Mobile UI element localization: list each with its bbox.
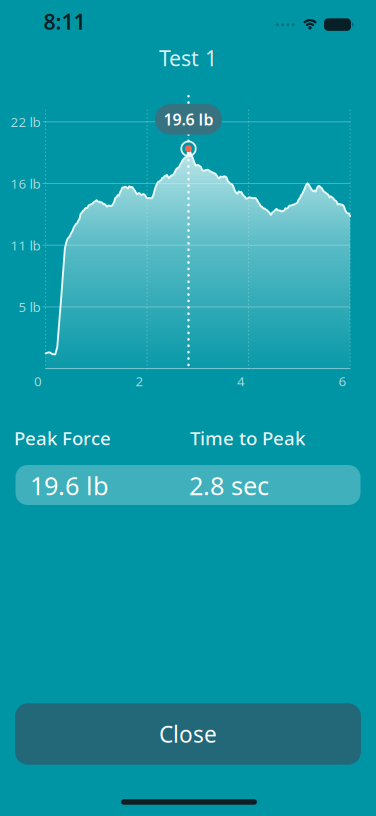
staticText: Close bbox=[159, 719, 217, 749]
button[interactable]: Close bbox=[15, 703, 361, 765]
staticText: Test 1 bbox=[159, 44, 217, 72]
staticText: 8:11 bbox=[43, 7, 85, 36]
staticText: 5 lb bbox=[18, 298, 40, 316]
staticText: Time to Peak bbox=[190, 426, 305, 450]
staticText: 0 bbox=[34, 372, 42, 390]
staticText: 11 lb bbox=[10, 236, 40, 254]
staticText: 19.6 lb bbox=[163, 109, 213, 130]
staticText: 2 bbox=[136, 372, 144, 390]
staticText: 2.8 sec bbox=[189, 469, 269, 502]
staticText: 16 lb bbox=[10, 175, 40, 192]
staticText: 19.6 lb bbox=[30, 469, 109, 502]
staticText: 4 bbox=[237, 372, 245, 390]
staticText: 6 bbox=[339, 372, 347, 390]
staticText: 22 lb bbox=[10, 113, 40, 131]
staticText: Peak Force bbox=[14, 426, 111, 450]
